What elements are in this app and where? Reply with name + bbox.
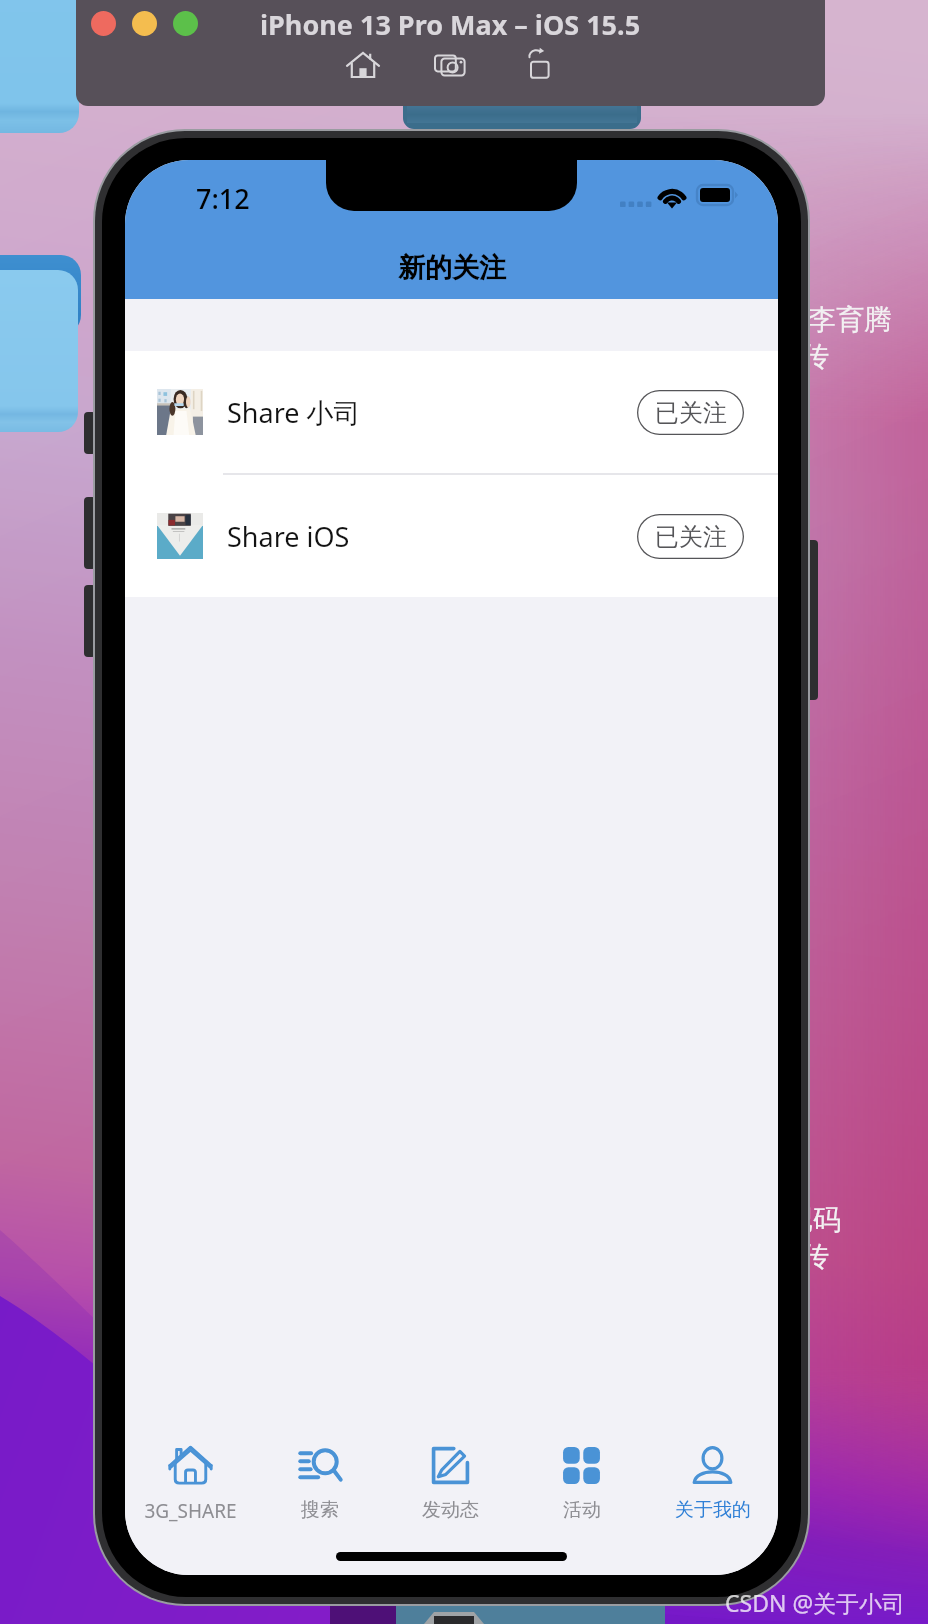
button[interactable]: Close bbox=[91, 11, 116, 36]
button[interactable]: Zoom bbox=[173, 11, 198, 36]
staticText: iPhone 13 Pro Max – iOS 15.5 bbox=[260, 6, 641, 43]
staticText: 新的关注 bbox=[398, 251, 506, 285]
staticText: 搜索 bbox=[301, 1498, 339, 1522]
staticText: 已关注 bbox=[655, 522, 727, 552]
staticText: 已关注 bbox=[655, 398, 727, 428]
button[interactable]: Minimize bbox=[132, 11, 157, 36]
staticText: 传 bbox=[801, 1239, 829, 1274]
button[interactable]: Screenshot bbox=[431, 45, 471, 85]
staticText: 3G_SHARE bbox=[144, 1498, 237, 1524]
button[interactable]: 已关注 bbox=[637, 390, 744, 435]
button[interactable]: 搜索 bbox=[255, 1442, 385, 1522]
button[interactable]: Share 小司 bbox=[125, 351, 778, 473]
button[interactable]: Rotate bbox=[519, 45, 559, 85]
button[interactable]: 关于我的 bbox=[647, 1442, 778, 1522]
staticText: 记码 bbox=[785, 1202, 841, 1237]
button[interactable]: Home bbox=[343, 45, 383, 85]
button[interactable]: 已关注 bbox=[637, 514, 744, 559]
staticText: Share iOS bbox=[227, 518, 350, 555]
button[interactable]: 发动态 bbox=[385, 1442, 516, 1522]
staticText: 李育腾 bbox=[808, 302, 892, 337]
staticText: 关于我的 bbox=[675, 1498, 751, 1522]
staticText: 7:12 bbox=[196, 180, 250, 217]
staticText: 传 bbox=[801, 339, 829, 374]
button[interactable]: Share iOS bbox=[125, 475, 778, 597]
button[interactable]: 3G_SHARE bbox=[125, 1442, 255, 1524]
staticText: 发动态 bbox=[422, 1498, 479, 1522]
button[interactable]: 活动 bbox=[516, 1442, 647, 1522]
staticText: 活动 bbox=[563, 1498, 601, 1522]
staticText: CSDN @关于小司 bbox=[725, 1587, 906, 1618]
staticText: Share 小司 bbox=[227, 394, 361, 431]
